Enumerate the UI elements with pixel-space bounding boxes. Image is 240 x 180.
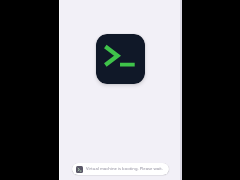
staticText: Virtual machine is booting. Please wait.: [86, 166, 163, 172]
button[interactable]: Terminal: [96, 34, 145, 84]
button[interactable]: Virtual machine is booting. Please wait.: [72, 163, 169, 175]
